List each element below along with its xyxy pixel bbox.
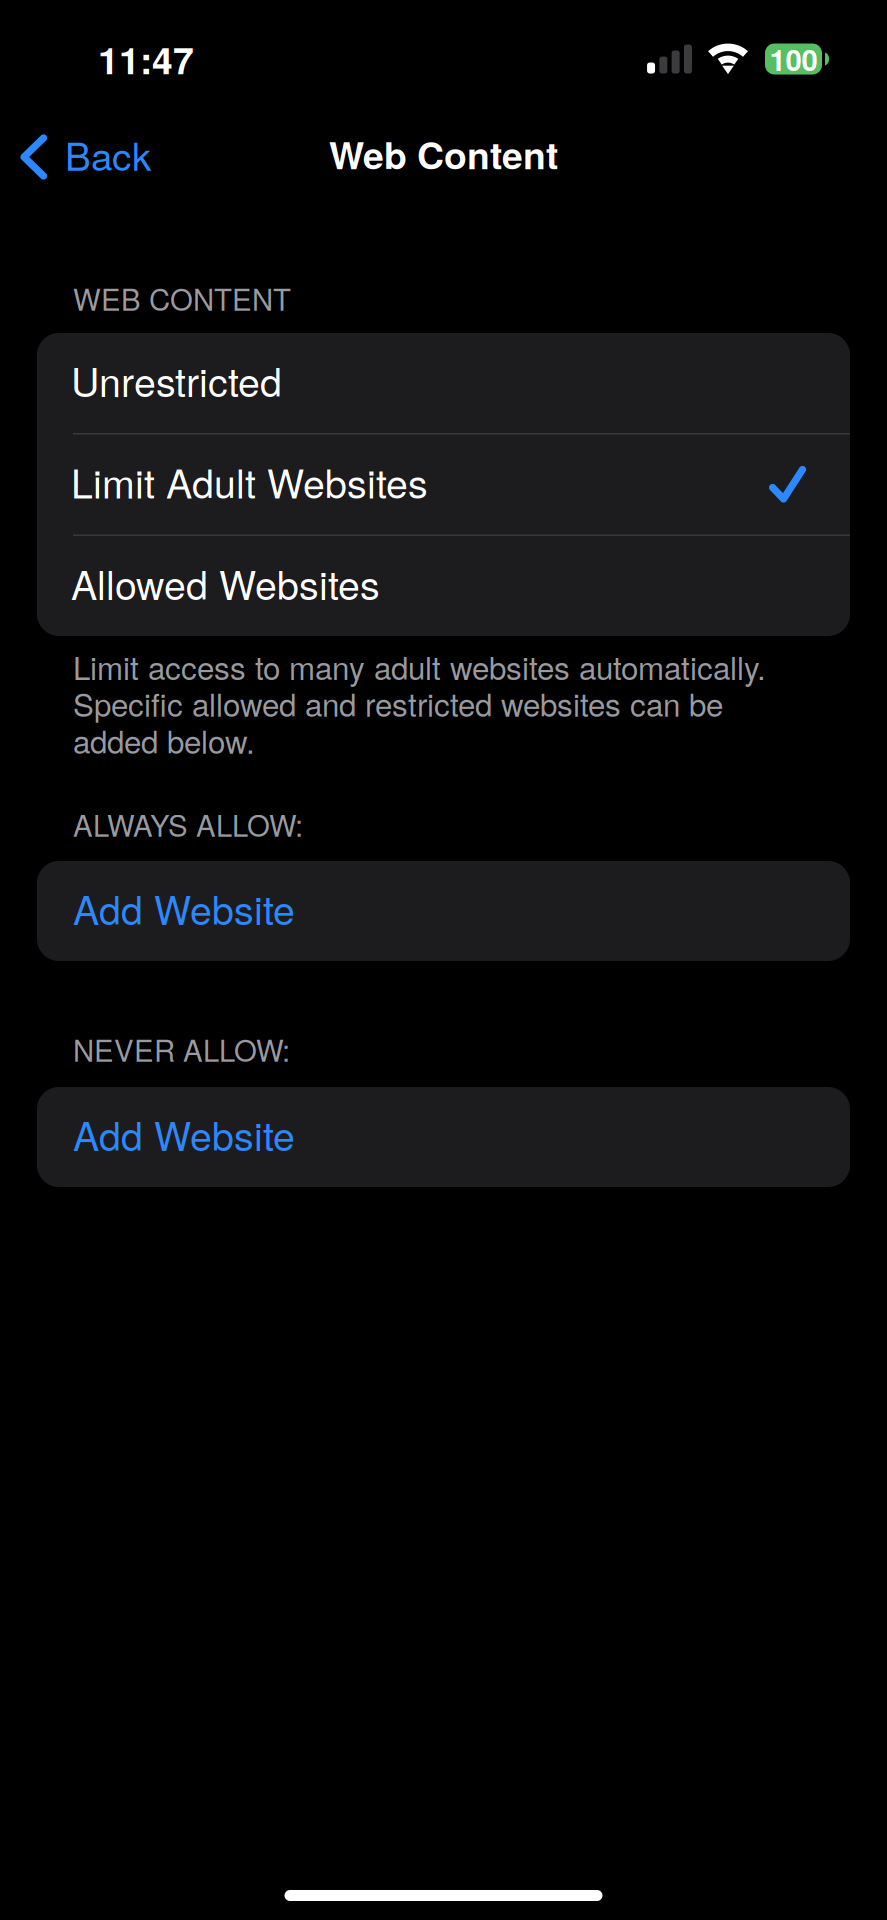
button[interactable]: Unrestricted [37, 333, 850, 433]
staticText: Add Website [73, 1106, 295, 1162]
staticText: Web Content [329, 127, 558, 181]
staticText: WEB CONTENT [73, 277, 291, 319]
button[interactable]: Limit Adult Websites [37, 434, 850, 534]
staticText: 11:47 [98, 32, 194, 86]
staticText: NEVER ALLOW: [73, 1028, 290, 1070]
staticText: Allowed Websites [71, 555, 380, 611]
staticText: Limit Adult Websites [71, 453, 428, 510]
staticText: Unrestricted [71, 352, 282, 408]
button[interactable]: Back [0, 115, 165, 193]
button[interactable]: Add Website [0, 1087, 887, 1187]
button[interactable]: Allowed Websites [37, 536, 850, 636]
button[interactable]: Add Website [0, 861, 887, 961]
staticText: ALWAYS ALLOW: [73, 803, 303, 845]
staticText: Back [65, 126, 151, 182]
staticText: 100 [769, 38, 817, 80]
staticText: Limit access to many adult websites auto… [73, 644, 766, 763]
staticText: Add Website [73, 880, 295, 936]
